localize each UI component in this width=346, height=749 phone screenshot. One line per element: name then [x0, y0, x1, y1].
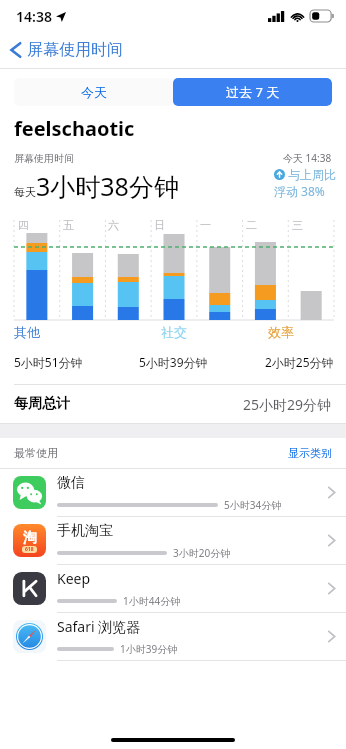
staticText: Safari 浏览器 [57, 617, 141, 636]
staticText: 其他 [14, 324, 40, 340]
staticText: 手机淘宝 [57, 522, 113, 540]
staticText: 今天 14:38 [283, 151, 332, 165]
staticText: 二 [246, 218, 257, 232]
staticText: 屏幕使用时间 [27, 40, 123, 60]
staticText: 五 [63, 218, 74, 232]
button[interactable]: 显示类别 [288, 446, 332, 460]
staticText: 14:38 [16, 7, 52, 26]
staticText: 日 [154, 218, 165, 232]
staticText: 六 [108, 218, 119, 232]
button[interactable]: 淘 [0, 517, 346, 565]
staticText: 5小时34分钟 [224, 498, 282, 512]
staticText: 社交 [161, 324, 187, 340]
button[interactable]: Back [0, 32, 346, 68]
staticText: 最常使用 [14, 446, 58, 460]
staticText: 25小时29分钟 [243, 395, 332, 414]
staticText: 效率 [268, 324, 294, 340]
staticText: 与上周比 [288, 167, 336, 182]
button[interactable]: 微信 [0, 469, 346, 517]
staticText: 1小时39分钟 [120, 642, 178, 656]
staticText: 1小时44分钟 [123, 594, 181, 608]
staticText: 显示类别 [288, 446, 332, 460]
staticText: Keep [57, 569, 91, 588]
staticText: 淘 [23, 529, 37, 547]
staticText: 618 [25, 546, 34, 553]
other: Back [10, 40, 22, 60]
staticText: 今天 [81, 84, 107, 100]
staticText: 微信 [57, 474, 85, 492]
button[interactable]: 今天 [14, 78, 173, 106]
staticText: 屏幕使用时间 [14, 152, 74, 165]
staticText: 三 [292, 218, 303, 232]
staticText: 3小时38分钟 [36, 169, 179, 203]
staticText: 浮动 38% [274, 183, 325, 199]
staticText: 过去 7 天 [226, 83, 280, 101]
staticText: feelschaotic [14, 115, 135, 142]
staticText: 5小时51分钟 [14, 354, 83, 370]
staticText: 2小时25分钟 [265, 354, 334, 370]
staticText: 每天 [14, 185, 36, 199]
staticText: 一 [200, 218, 211, 232]
button[interactable]: 每周总计 [0, 385, 346, 423]
staticText: 5小时39分钟 [139, 354, 208, 370]
staticText: 每周总计 [14, 395, 70, 413]
button[interactable]: Safari 浏览器 [0, 613, 346, 661]
staticText: 四 [18, 218, 29, 232]
staticText: 3小时20分钟 [173, 546, 231, 560]
button[interactable]: Keep [0, 565, 346, 613]
button[interactable]: 过去 7 天 [173, 78, 332, 106]
